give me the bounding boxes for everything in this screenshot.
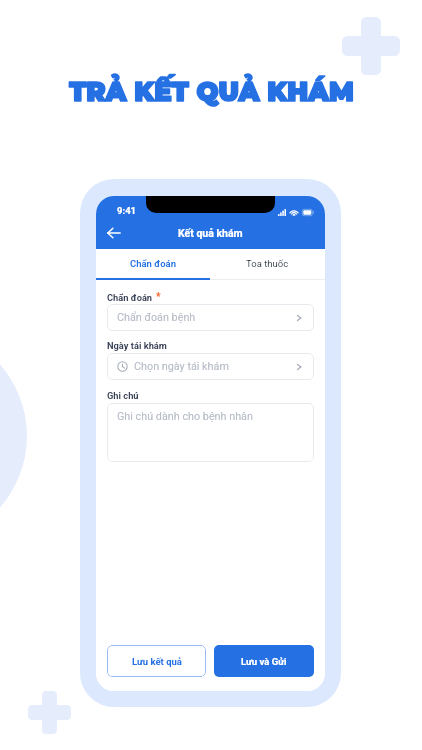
button[interactable]: Lưu kết quả — [107, 645, 206, 677]
staticText: TRẢ KẾT QUẢ KHÁM — [69, 76, 354, 108]
staticText: Chẩn đoán — [107, 292, 153, 303]
staticText: Chẩn đoán bệnh — [117, 311, 196, 324]
staticText: Chọn ngày tái khám — [134, 360, 229, 373]
button[interactable]: Chẩn đoán bệnh — [107, 304, 314, 331]
staticText: Toa thuốc — [246, 258, 289, 269]
staticText: 9:41 — [117, 205, 137, 216]
staticText: * — [156, 291, 161, 303]
staticText: Kết quả khám — [178, 227, 243, 239]
button[interactable]: Toa thuốc — [210, 249, 325, 278]
staticText: Chẩn đoán — [130, 258, 176, 269]
button[interactable]: Back — [102, 221, 126, 245]
staticText: Lưu và Gửi — [241, 656, 287, 667]
staticText: TRẢ KẾT QUẢ KHÁM — [69, 76, 354, 108]
button[interactable]: Lưu và Gửi — [214, 645, 314, 677]
staticText: TRẢ KẾT QUẢ KHÁM — [69, 76, 354, 108]
button[interactable]: Chẩn đoán — [96, 249, 210, 278]
staticText: Ghi chú dành cho bệnh nhân — [117, 410, 253, 423]
button[interactable]: Chọn ngày tái khám — [107, 353, 314, 380]
button[interactable]: Ghi chú dành cho bệnh nhân — [107, 403, 314, 462]
staticText: Lưu kết quả — [132, 656, 182, 667]
staticText: Ngày tái khám — [107, 340, 167, 351]
staticText: Ghi chú — [107, 390, 139, 401]
